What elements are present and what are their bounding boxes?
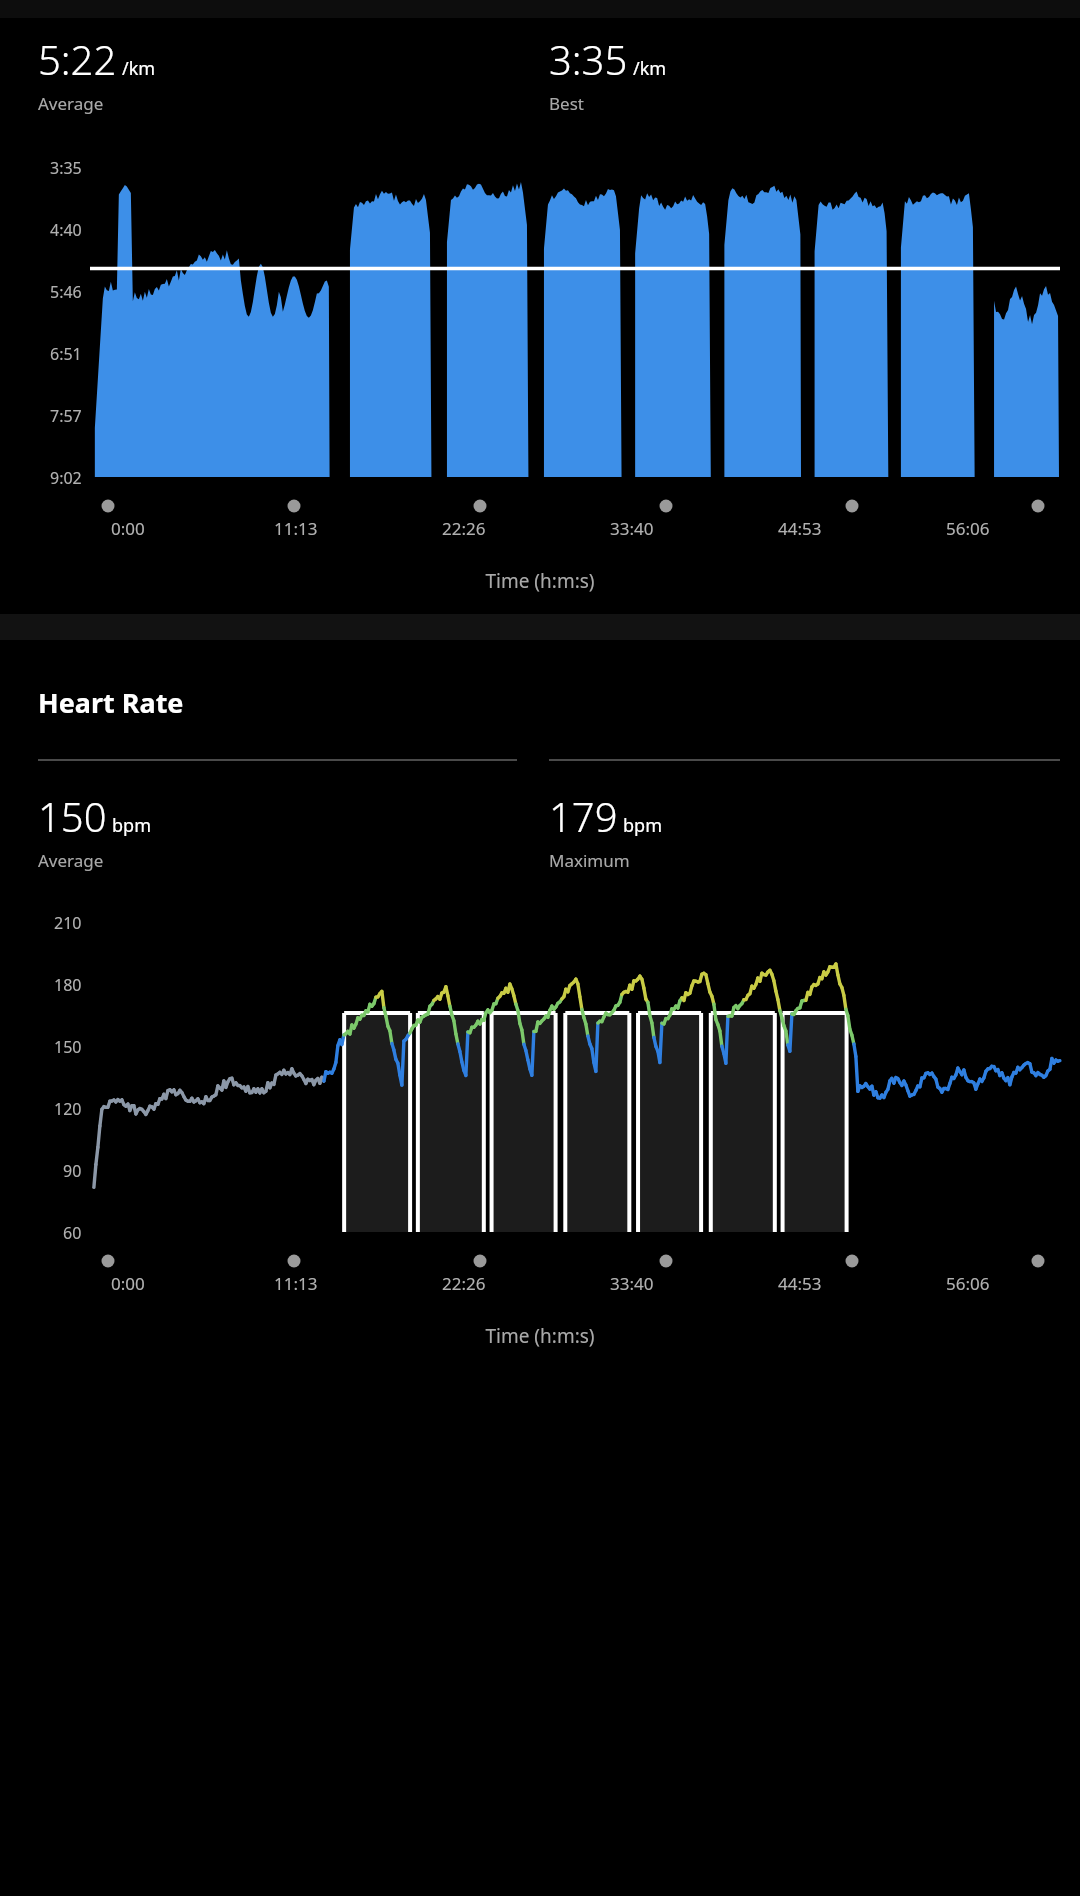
staticText: Time (h:m:s) [20,568,1060,594]
staticText: Best [549,92,584,115]
staticText: Time (h:m:s) [20,1323,1060,1349]
staticText: 3:35 [549,32,628,86]
staticText: 56:06 [946,1272,990,1295]
staticText: 44:53 [778,1272,822,1295]
staticText: Average [38,92,104,115]
staticText: bpm [112,813,151,838]
staticText: 22:26 [442,1272,486,1295]
staticText: 180 [54,974,82,994]
staticText: 33:40 [610,517,654,540]
staticText: 56:06 [946,517,990,540]
staticText: 11:13 [274,1272,318,1295]
staticText: 3:35 [50,157,82,177]
staticText: /km [122,56,156,81]
staticText: 5:46 [50,281,82,301]
staticText: 9:02 [50,467,82,487]
staticText: Average [38,849,104,872]
staticText: 22:26 [442,517,486,540]
staticText: 120 [54,1098,82,1118]
staticText: 150 [54,1036,82,1056]
staticText: 0:00 [111,517,145,540]
staticText: 4:40 [50,219,82,239]
button[interactable]: Heart Rate [38,684,184,721]
staticText: 7:57 [50,405,82,425]
staticText: Maximum [549,849,630,872]
staticText: 33:40 [610,1272,654,1295]
staticText: bpm [623,813,662,838]
staticText: 6:51 [50,343,82,363]
staticText: 210 [54,912,82,932]
staticText: 150 [38,789,107,843]
staticText: 5:22 [38,32,117,86]
staticText: 11:13 [274,517,318,540]
staticText: 90 [63,1160,82,1180]
staticText: 179 [549,789,618,843]
staticText: /km [633,56,667,81]
staticText: 0:00 [111,1272,145,1295]
staticText: 44:53 [778,517,822,540]
staticText: 60 [63,1222,82,1242]
